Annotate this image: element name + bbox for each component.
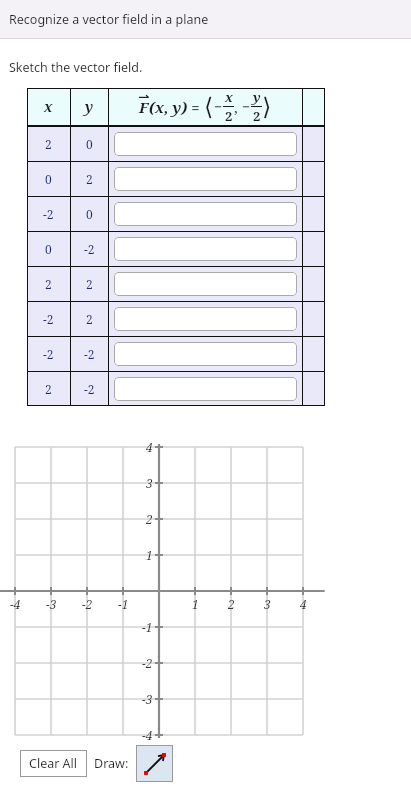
staticText: 2 [253,107,261,125]
staticText: -4 [10,596,21,612]
staticText: y [253,88,261,106]
staticText: -4 [142,727,153,743]
staticText: 0 [45,241,52,257]
staticText: 2 [45,381,52,397]
staticText: -2 [142,655,153,671]
button[interactable]: Clear All [20,750,87,777]
staticText: -2 [43,346,54,362]
staticText: 2 [45,136,52,152]
staticText: 3 [146,475,153,491]
staticText: 2 [86,311,93,327]
staticText: − [242,97,251,116]
staticText: F [139,97,149,117]
staticText: 2 [146,511,153,527]
staticText: 2 [228,596,235,612]
button[interactable] [114,307,297,331]
staticText: 0 [45,171,52,187]
staticText: 2 [45,276,52,292]
staticText: 2 [86,171,93,187]
staticText: 0 [86,136,93,152]
staticText: ⟨ [204,93,214,121]
staticText: Sketch the vector field. [9,59,143,76]
staticText: -1 [142,619,153,635]
button[interactable] [114,342,297,366]
staticText: − [214,97,223,116]
button[interactable] [114,377,297,401]
staticText: ⟩ [262,93,272,121]
button[interactable] [114,202,297,226]
staticText: -3 [46,596,57,612]
button[interactable] [114,272,297,296]
staticText: -2 [43,311,54,327]
staticText: 2 [225,107,233,125]
staticText: -2 [43,206,54,222]
staticText: x [225,88,233,106]
staticText: Recognize a vector field in a plane [9,11,209,28]
staticText: -2 [84,241,95,257]
staticText: Draw: [94,755,129,772]
staticText: 1 [192,596,199,612]
staticText: -2 [82,596,93,612]
staticText: 4 [300,596,307,612]
button[interactable] [114,167,297,191]
staticText: 3 [264,596,271,612]
staticText: 2 [86,276,93,292]
staticText: -2 [84,381,95,397]
staticText: Clear All [29,755,78,772]
staticText: x [44,97,53,116]
button[interactable] [114,132,297,156]
staticText: 0 [86,206,93,222]
button[interactable] [114,237,297,261]
staticText: -3 [142,691,153,707]
staticText: 4 [146,439,153,455]
staticText: -1 [118,596,129,612]
staticText: 1 [146,547,153,563]
staticText: , [234,97,242,117]
staticText: y [85,97,94,116]
staticText: -2 [84,346,95,362]
staticText: (x, y) = [149,97,204,117]
button[interactable]: Draw vector [136,745,173,782]
